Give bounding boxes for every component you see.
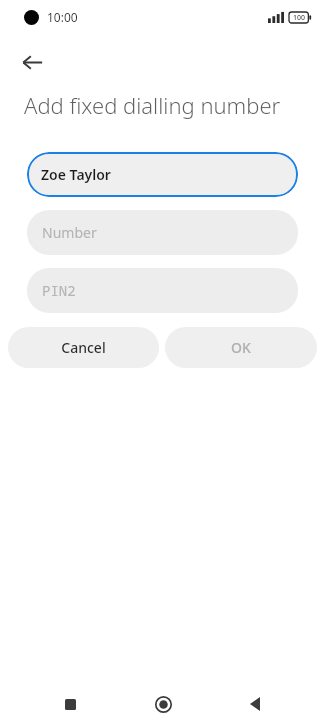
button[interactable]: Zoe Taylor: [27, 152, 298, 197]
button[interactable]: Recent apps: [48, 684, 92, 724]
staticText: OK: [231, 338, 251, 357]
staticText: 10:00: [47, 9, 78, 25]
button[interactable]: OK: [165, 327, 317, 368]
staticText: Number: [42, 223, 97, 242]
staticText: PIN2: [42, 281, 76, 300]
staticText: Add fixed dialling number: [24, 90, 281, 120]
staticText: Cancel: [61, 338, 106, 357]
staticText: 100: [293, 13, 306, 23]
button[interactable]: Cancel: [8, 327, 159, 368]
button[interactable]: PIN2: [27, 268, 298, 313]
button[interactable]: Home: [141, 684, 185, 724]
button[interactable]: Back: [233, 684, 277, 724]
button[interactable]: Back: [10, 40, 54, 84]
button[interactable]: Number: [27, 210, 298, 255]
staticText: Zoe Taylor: [41, 165, 111, 184]
